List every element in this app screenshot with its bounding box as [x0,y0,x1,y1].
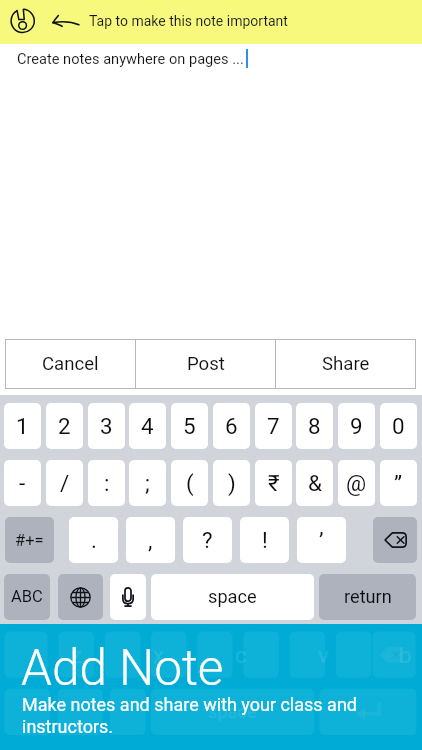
button[interactable]: 9 [338,403,375,449]
staticText: : [104,470,110,496]
staticText: Tap to make this note important [89,13,288,29]
staticText: ) [228,470,236,496]
button[interactable]: return [319,574,416,620]
button[interactable]: Cancel [6,340,135,388]
button[interactable]: Dictate [110,574,146,620]
other: Mark note important [8,6,38,36]
staticText: . [91,527,97,553]
staticText: , [148,527,153,553]
staticText: ABC [11,587,43,606]
staticText: 0 [392,413,405,439]
staticText: 1 [16,413,29,439]
button[interactable]: @ [338,460,375,506]
staticText: Cancel [42,353,99,375]
staticText: 4 [141,413,154,439]
button[interactable]: ( [171,460,208,506]
other: Back [50,12,82,30]
staticText: @ [346,470,367,496]
staticText: & [308,470,322,496]
button[interactable]: ; [129,460,166,506]
button[interactable]: : [88,460,125,506]
staticText: 6 [225,413,238,439]
button[interactable]: ₹ [255,460,292,506]
staticText: z [71,642,83,668]
button[interactable]: ! [240,517,289,563]
button[interactable]: ? [183,517,232,563]
button[interactable]: Share [276,340,415,388]
button[interactable]: Change keyboard [58,574,103,620]
staticText: / [60,470,70,496]
button[interactable]: 0 [380,403,417,449]
button[interactable]: 6 [213,403,250,449]
button[interactable]: Mark note important [0,0,422,44]
staticText: ’ [319,527,324,553]
staticText: - [19,470,26,496]
staticText: 8 [308,413,321,439]
button[interactable]: - [4,460,41,506]
button[interactable]: , [126,517,175,563]
button[interactable]: Backspace [373,517,417,563]
staticText: v [318,642,329,668]
button[interactable]: & [296,460,333,506]
button[interactable]: 7 [255,403,292,449]
button[interactable]: Post [136,340,275,388]
button[interactable]: ” [380,460,417,506]
button[interactable]: / [46,460,83,506]
staticText: Add Note [21,639,224,697]
staticText: 2 [58,413,71,439]
button[interactable]: space [151,574,314,620]
button[interactable]: ’ [297,517,346,563]
button[interactable]: ABC [4,574,50,620]
staticText: Create notes anywhere on pages ... [17,50,244,67]
button[interactable]: ) [213,460,250,506]
staticText: #+= [15,531,44,550]
staticText: x [153,642,165,668]
staticText: b [399,642,412,668]
staticText: 9 [350,413,363,439]
staticText: space [208,701,257,722]
staticText: Make notes and share with your class and… [22,694,367,738]
staticText: ( [186,470,194,496]
staticText: ! [262,527,268,553]
staticText: Share [322,353,370,375]
staticText: ; [145,470,150,496]
staticText: ? [202,527,213,553]
button[interactable]: . [69,517,118,563]
staticText: 3 [100,413,113,439]
button[interactable]: 2 [46,403,83,449]
button[interactable]: z [0,624,422,750]
staticText: ” [394,470,403,496]
staticText: space [208,586,257,607]
button[interactable]: 5 [171,403,208,449]
button[interactable]: 4 [129,403,166,449]
staticText: 5 [183,413,196,439]
button[interactable]: 8 [296,403,333,449]
staticText: c [235,642,247,668]
staticText: ₹ [268,470,280,496]
staticText: return [344,586,392,607]
button[interactable]: 1 [4,403,41,449]
staticText: Post [187,353,225,375]
button[interactable]: #+= [5,517,54,563]
button[interactable]: 3 [88,403,125,449]
staticText: 7 [267,413,280,439]
